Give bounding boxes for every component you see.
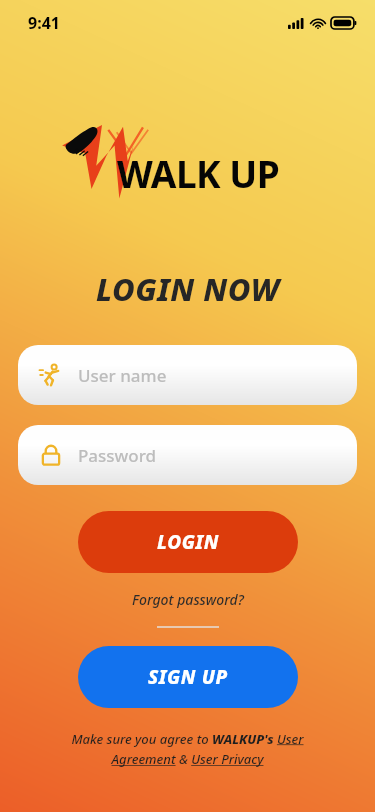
button[interactable]: LOGIN: [78, 511, 298, 573]
button[interactable]: Password: [18, 425, 357, 485]
staticText: SIGN UP: [148, 664, 228, 690]
staticText: User name: [78, 364, 167, 387]
staticText: LOGIN NOW: [96, 268, 280, 310]
button[interactable]: SIGN UP: [78, 646, 298, 708]
staticText: Forgot password?: [132, 590, 244, 609]
staticText: LOGIN: [157, 529, 220, 555]
staticText: 9:41: [28, 12, 60, 34]
staticText: Password: [78, 444, 157, 467]
button[interactable]: Make sure you agree to WALKUP's User Agr…: [40, 730, 335, 768]
staticText: WALK UP: [117, 148, 280, 198]
staticText: Make sure you agree to WALKUP's User Agr…: [40, 730, 335, 768]
button[interactable]: Forgot password?: [124, 587, 252, 612]
button[interactable]: User name: [18, 345, 357, 405]
